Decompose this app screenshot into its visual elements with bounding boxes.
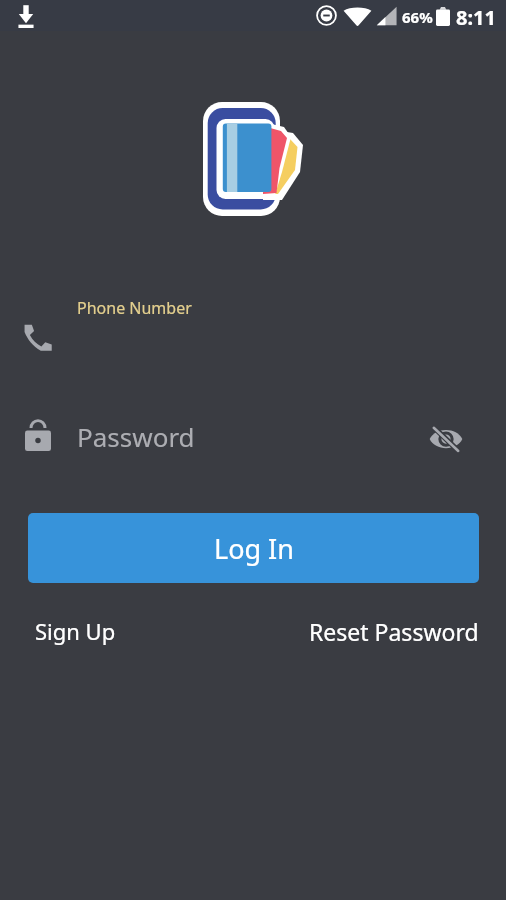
staticText: 8:11 [456,4,496,31]
staticText: Log In [214,530,294,567]
staticText: Password [77,419,195,454]
button[interactable]: Phone Number [14,288,492,370]
staticText: Sign Up [35,616,116,646]
button[interactable]: Log In [28,513,479,583]
staticText: 66% [402,7,433,27]
button[interactable]: Show password [424,416,468,460]
button[interactable]: Password [14,408,492,470]
staticText: Reset Password [309,616,479,647]
staticText: Phone Number [77,297,192,319]
button[interactable]: Sign Up [21,607,130,655]
button[interactable]: Reset Password [295,607,493,655]
